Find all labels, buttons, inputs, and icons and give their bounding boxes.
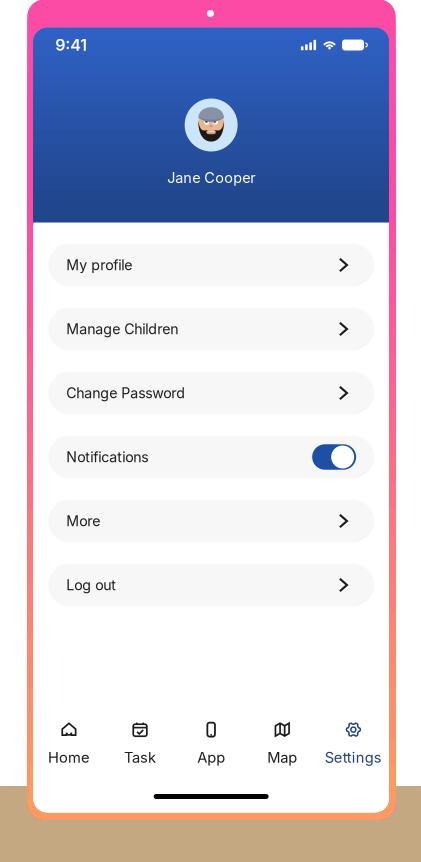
button[interactable]: Change Password	[48, 371, 374, 414]
staticText: Log out	[66, 576, 116, 593]
button[interactable]: Map	[247, 720, 318, 768]
staticText: Map	[267, 749, 297, 766]
staticText: 9:41	[55, 35, 87, 55]
staticText: Notifications	[66, 448, 148, 465]
button[interactable]: App	[176, 720, 247, 768]
button[interactable]: More	[48, 499, 374, 542]
staticText: Task	[124, 749, 156, 766]
button[interactable]: Notifications	[312, 444, 356, 470]
staticText: Settings	[325, 749, 382, 766]
button[interactable]: Settings	[318, 720, 389, 768]
button[interactable]: My profile	[48, 243, 374, 286]
button[interactable]: Home	[33, 720, 104, 768]
staticText: Jane Cooper	[167, 169, 255, 186]
button[interactable]: Log out	[48, 563, 374, 606]
staticText: More	[66, 512, 100, 529]
staticText: Manage Children	[66, 320, 178, 337]
staticText: My profile	[66, 256, 132, 273]
button[interactable]: Task	[104, 720, 176, 768]
staticText: App	[197, 749, 225, 766]
button[interactable]: Manage Children	[48, 307, 374, 350]
staticText: Change Password	[66, 384, 185, 401]
staticText: Home	[48, 749, 90, 766]
